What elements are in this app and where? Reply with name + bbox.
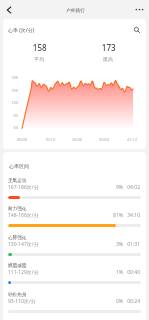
button[interactable]: More options (131, 1, 149, 19)
staticText: 93-110次/分 (8, 298, 36, 305)
staticText: 186 (5, 75, 18, 80)
staticText: 1% (101, 269, 123, 276)
staticText: 60 (5, 125, 18, 130)
staticText: 10:19 (41, 137, 59, 142)
button[interactable]: Back (0, 1, 18, 19)
staticText: 平均 (34, 56, 44, 62)
staticText: 0% (101, 298, 123, 305)
button[interactable]: 无氧运动 (3, 176, 146, 204)
staticText: 41:12 (123, 137, 141, 142)
button[interactable]: 173 (92, 42, 124, 62)
staticText: 130-147次/分 (8, 241, 39, 248)
staticText: 34:10 (118, 212, 140, 219)
button[interactable]: 心肺强化 (3, 233, 146, 261)
staticText: 01:31 (118, 241, 140, 248)
staticText: 158 (32, 42, 47, 53)
staticText: 81% (101, 212, 123, 219)
staticText: 户外骑行 (66, 7, 85, 13)
staticText: 124 (5, 100, 18, 105)
staticText: 9% (101, 184, 123, 191)
staticText: 无氧运动 (8, 178, 27, 184)
staticText: 心肺强化 (8, 235, 27, 241)
staticText: 心率区间 (9, 163, 29, 169)
staticText: 耐力强化 (8, 206, 27, 212)
staticText: 167-186次/分 (8, 184, 39, 191)
staticText: 轻松热身 (8, 292, 27, 298)
staticText: 93 (5, 113, 18, 118)
staticText: 燃脂减脂 (8, 263, 27, 269)
button[interactable]: Search (131, 24, 142, 35)
staticText: 30:54 (95, 137, 113, 142)
staticText: 3% (101, 241, 123, 248)
staticText: 心率 (次/分) (8, 27, 35, 34)
button[interactable]: 耐力强化 (3, 204, 146, 232)
button[interactable]: 燃脂减脂 (3, 261, 146, 289)
staticText: 最高 (103, 56, 113, 62)
staticText: 00:40 (118, 269, 140, 276)
staticText: 111-129次/分 (8, 269, 39, 276)
button[interactable]: 158 (23, 42, 55, 62)
staticText: 00:00 (13, 137, 31, 142)
staticText: 20:36 (68, 137, 86, 142)
staticText: 04:02 (118, 184, 140, 191)
button[interactable]: 轻松热身 (3, 290, 146, 318)
staticText: 00:24 (118, 298, 140, 305)
staticText: 173 (101, 42, 116, 53)
staticText: 155 (5, 88, 18, 93)
staticText: 148-166次/分 (8, 212, 39, 219)
